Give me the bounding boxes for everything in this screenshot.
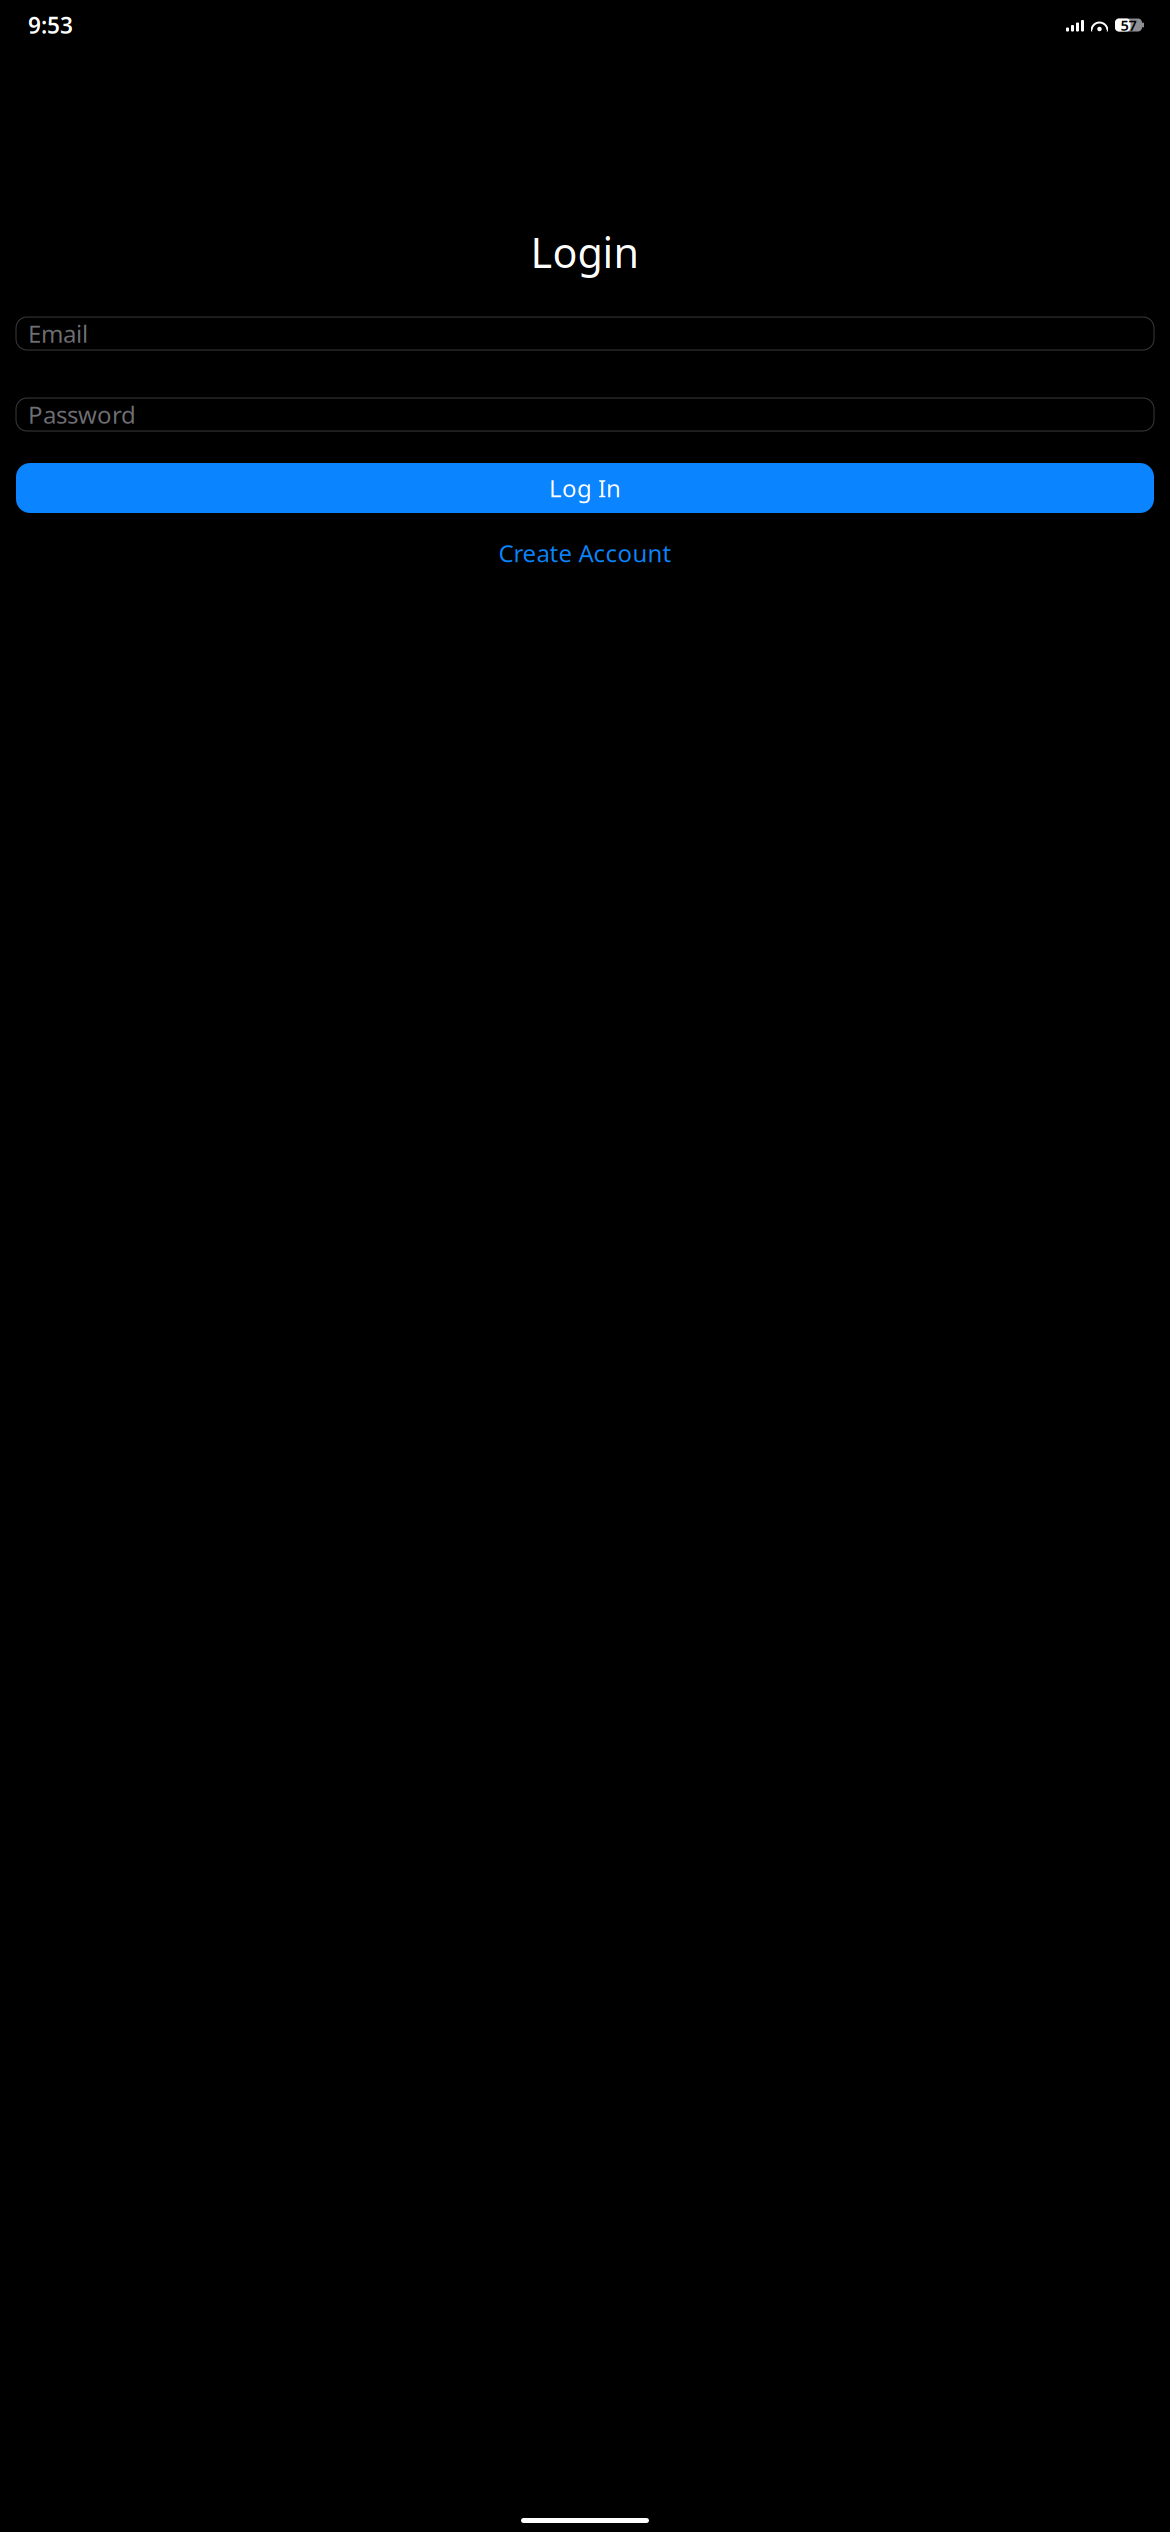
button[interactable]: Create Account	[16, 538, 1154, 568]
button[interactable]: Log In	[16, 463, 1154, 513]
staticText: Password	[28, 399, 136, 430]
staticText: 57	[1120, 15, 1136, 35]
staticText: Create Account	[498, 537, 671, 569]
staticText: Login	[530, 225, 639, 279]
staticText: Log In	[549, 472, 621, 504]
staticText: 9:53	[28, 10, 73, 40]
staticText: Email	[28, 318, 88, 349]
